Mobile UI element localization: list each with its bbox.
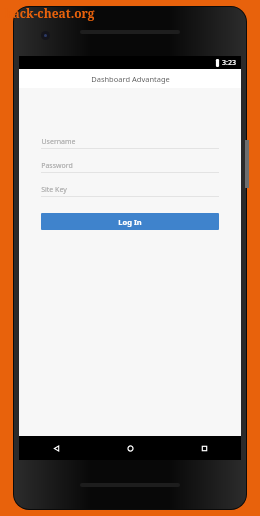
button[interactable]: Password: [41, 159, 219, 173]
button[interactable]: Username: [41, 135, 219, 149]
button[interactable]: Recents: [167, 436, 241, 460]
staticText: Log In: [118, 217, 142, 227]
staticText: 3:23: [222, 58, 236, 68]
staticText: Site Key: [41, 185, 67, 195]
button[interactable]: Back: [19, 436, 93, 460]
button[interactable]: Home: [93, 436, 167, 460]
button[interactable]: Site Key: [41, 183, 219, 197]
staticText: Password: [41, 161, 73, 171]
staticText: hack-cheat.org: [4, 5, 95, 21]
button[interactable]: Log In: [41, 213, 219, 230]
staticText: Username: [41, 137, 76, 147]
staticText: Dashboard Advantage: [91, 74, 170, 84]
